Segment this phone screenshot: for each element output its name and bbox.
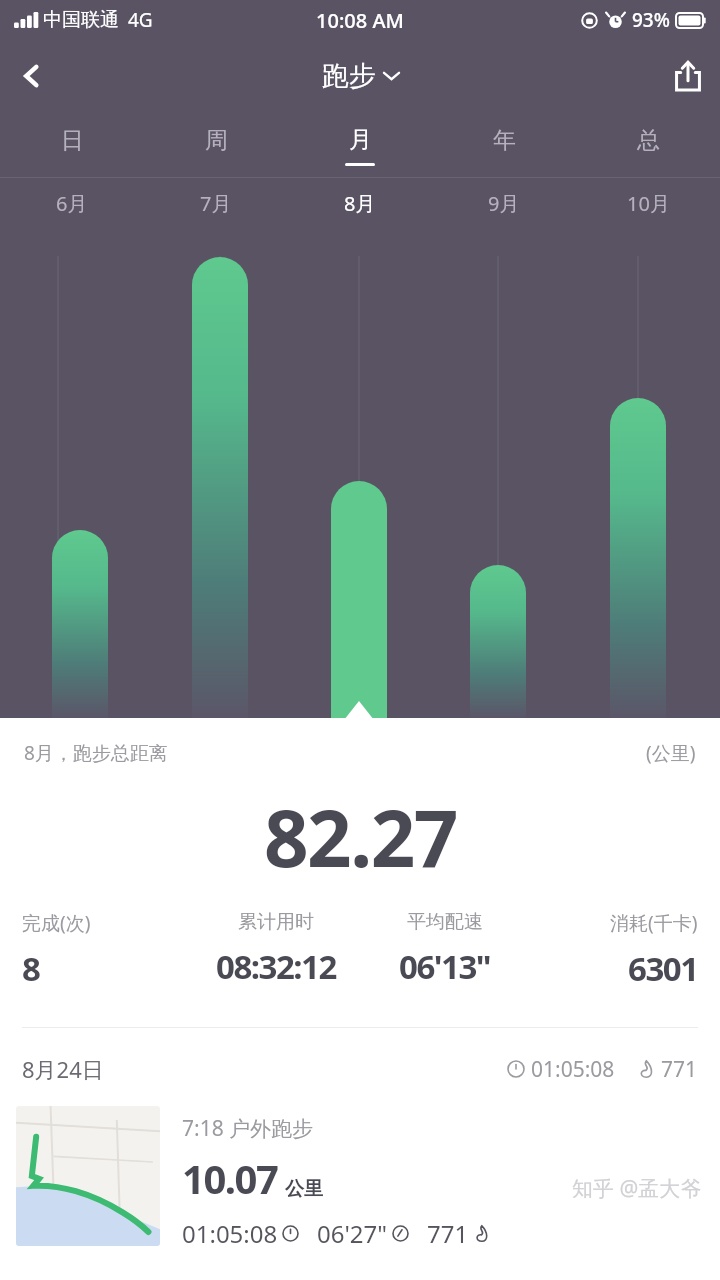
staticText: 知乎 @孟大爷: [572, 1174, 702, 1203]
staticText: 7月: [200, 190, 232, 217]
staticText: 累计用时: [238, 910, 314, 934]
button[interactable]: Back: [0, 44, 64, 108]
staticText: 771: [661, 1055, 698, 1084]
staticText: 周: [205, 126, 228, 155]
button[interactable]: 月: [288, 112, 432, 178]
staticText: 82.27: [264, 784, 457, 890]
staticText: 08:32:12: [216, 944, 336, 989]
button[interactable]: 周: [144, 112, 288, 178]
staticText: 公里: [285, 1177, 323, 1201]
staticText: 总: [637, 126, 660, 155]
staticText: 跑步: [322, 59, 376, 93]
staticText: 10月: [627, 190, 670, 217]
staticText: 06'27": [317, 1217, 388, 1250]
staticText: 月: [349, 125, 372, 154]
button[interactable]: 7:18 户外跑步: [16, 1106, 704, 1250]
staticText: 日: [61, 126, 84, 155]
button[interactable]: 日: [0, 112, 144, 178]
staticText: 8月，跑步总距离: [24, 740, 168, 766]
staticText: 平均配速: [407, 910, 483, 934]
button[interactable]: 总: [576, 112, 720, 178]
staticText: 01:05:08: [531, 1055, 615, 1084]
staticText: 8: [22, 946, 40, 991]
button[interactable]: 年: [432, 112, 576, 178]
staticText: 4G: [128, 7, 153, 33]
staticText: 01:05:08: [182, 1217, 278, 1250]
staticText: 6月: [56, 190, 88, 217]
staticText: 06'13": [399, 944, 491, 989]
staticText: 93%: [632, 7, 670, 33]
button[interactable]: 跑步: [322, 59, 399, 93]
staticText: (公里): [646, 740, 696, 766]
staticText: 中国联通: [43, 8, 119, 32]
staticText: 771: [427, 1217, 469, 1250]
staticText: 8月: [344, 190, 376, 217]
button[interactable]: Share: [656, 44, 720, 108]
staticText: 7:18 户外跑步: [182, 1114, 314, 1143]
staticText: 完成(次): [22, 910, 91, 936]
staticText: 10.07: [182, 1151, 278, 1205]
staticText: 年: [493, 126, 516, 155]
staticText: 9月: [488, 190, 520, 217]
staticText: 8月24日: [22, 1054, 104, 1084]
staticText: 6301: [628, 946, 698, 991]
staticText: 10:08 AM: [316, 7, 404, 34]
staticText: 消耗(千卡): [610, 910, 698, 936]
